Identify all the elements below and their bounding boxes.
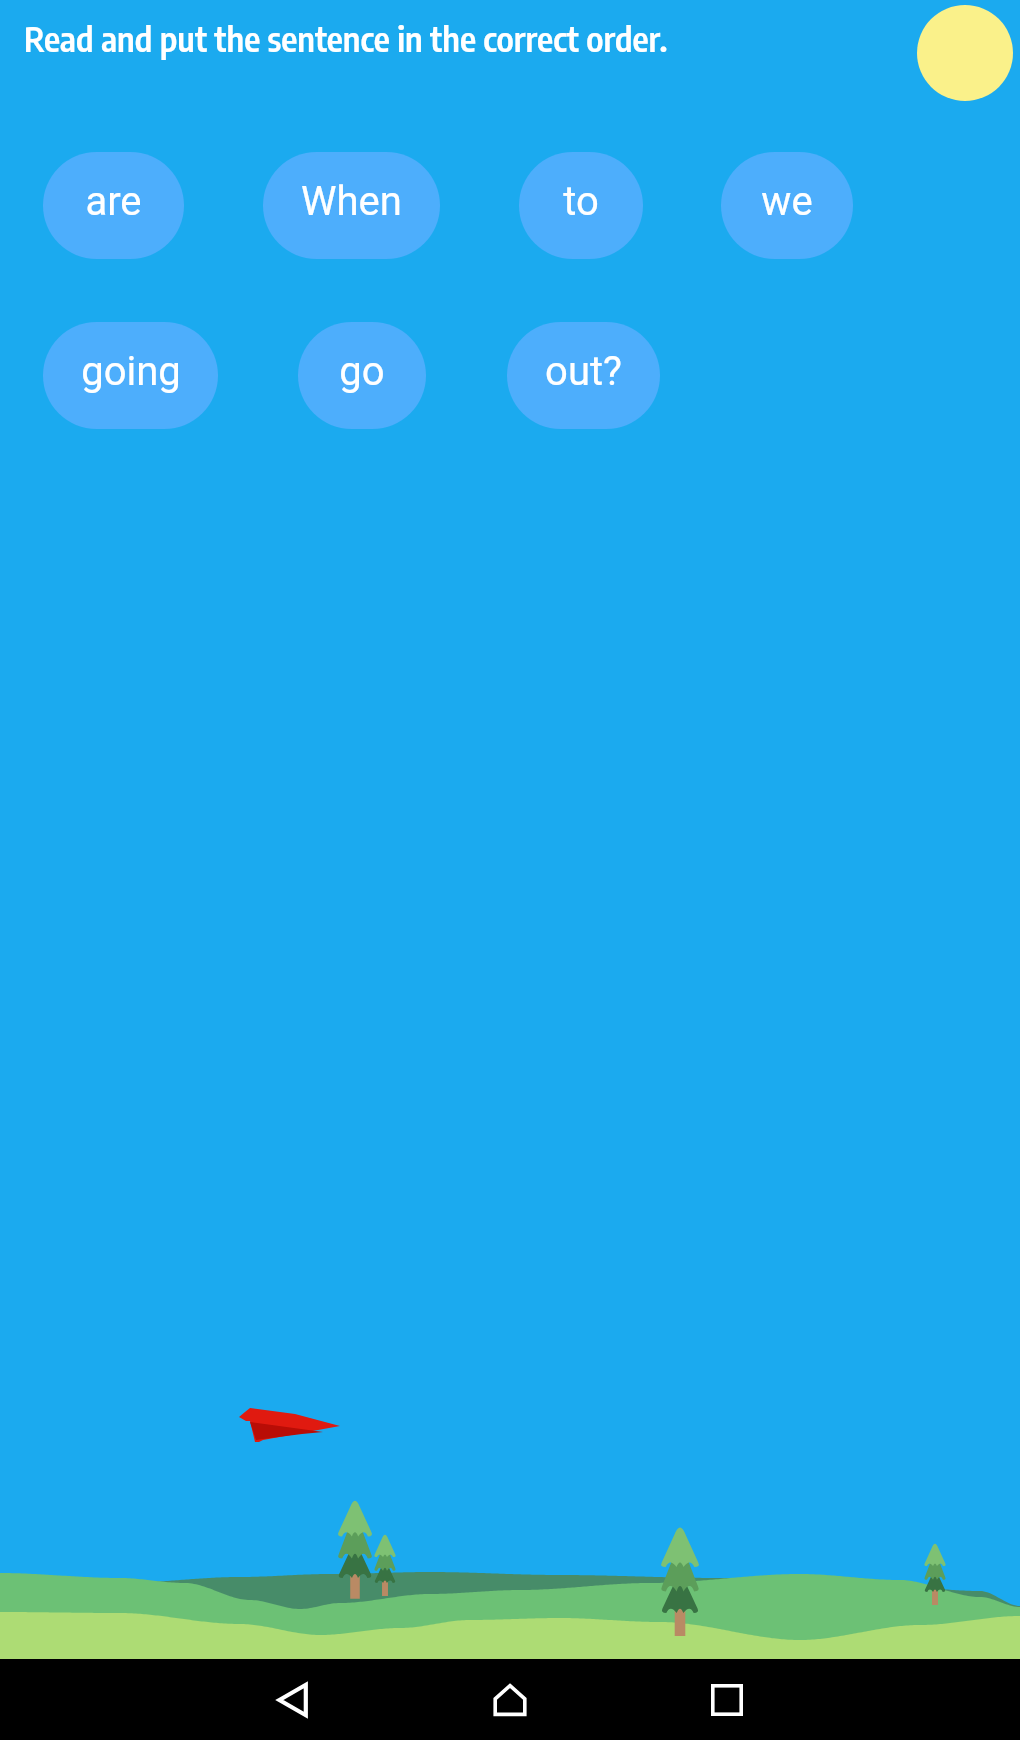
button[interactable]: we: [721, 152, 853, 259]
button[interactable]: Back: [239, 1659, 347, 1740]
staticText: When: [301, 178, 402, 225]
staticText: are: [85, 178, 142, 225]
button[interactable]: Recent apps: [673, 1659, 781, 1740]
button[interactable]: to: [519, 152, 643, 259]
staticText: to: [563, 178, 599, 225]
button[interactable]: When: [263, 152, 440, 259]
staticText: Read and put the sentence in the correct…: [24, 16, 668, 59]
button[interactable]: Home: [456, 1659, 564, 1740]
button[interactable]: are: [43, 152, 184, 259]
staticText: we: [761, 178, 813, 225]
button[interactable]: going: [43, 322, 218, 429]
staticText: going: [81, 348, 181, 395]
button[interactable]: go: [298, 322, 426, 429]
staticText: go: [339, 348, 385, 395]
staticText: out?: [545, 348, 622, 395]
button[interactable]: out?: [507, 322, 660, 429]
